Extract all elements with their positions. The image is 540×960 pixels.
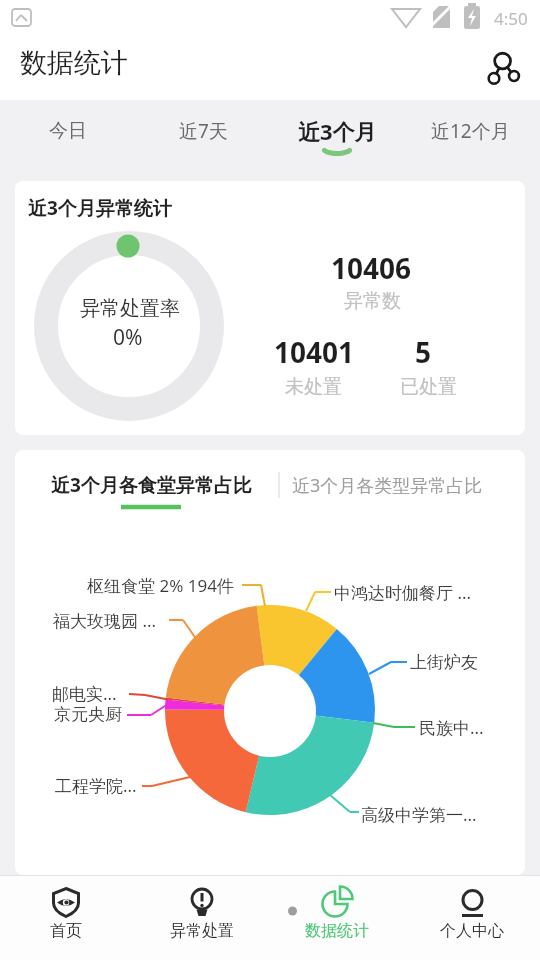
button[interactable]: 近3个月: [292, 100, 382, 162]
staticText: 京元央厨: [54, 704, 122, 725]
staticText: 10401: [274, 333, 355, 363]
staticText: 5: [415, 333, 432, 363]
staticText: 近3个月异常统计: [28, 195, 172, 218]
staticText: 中鸿达时伽餐厅 ...: [334, 581, 472, 602]
button[interactable]: 今日: [28, 100, 108, 162]
staticText: 工程学院...: [55, 774, 137, 795]
staticText: 4:50: [494, 7, 528, 30]
button[interactable]: 近12个月: [420, 100, 520, 162]
button[interactable]: 近7天: [163, 100, 243, 162]
staticText: 近12个月: [431, 118, 510, 144]
staticText: 异常数: [344, 289, 401, 310]
staticText: 近3个月各类型异常占比: [292, 473, 483, 494]
button[interactable]: [162, 878, 242, 958]
staticText: 近3个月各食堂异常占比: [51, 472, 252, 494]
staticText: 已处置: [400, 375, 457, 396]
staticText: 上街炉友: [410, 652, 478, 673]
staticText: 高级中学第一...: [361, 803, 477, 824]
button[interactable]: [36, 462, 268, 514]
staticText: 数据统计: [305, 921, 369, 941]
staticText: 未处置: [285, 375, 342, 396]
button[interactable]: [288, 462, 498, 514]
staticText: 数据统计: [20, 46, 128, 80]
staticText: 异常处置率: [80, 296, 180, 321]
staticText: 0%: [113, 323, 143, 347]
button[interactable]: [26, 878, 106, 958]
staticText: 近7天: [179, 118, 228, 144]
button[interactable]: [480, 44, 524, 88]
staticText: 近3个月: [298, 116, 377, 146]
staticText: 枢纽食堂 2% 194件: [87, 574, 234, 595]
staticText: 邮电实...: [52, 682, 117, 703]
staticText: 首页: [50, 921, 82, 941]
staticText: 个人中心: [440, 921, 504, 941]
staticText: 民族中...: [419, 716, 484, 737]
staticText: 福大玫瑰园 ...: [53, 609, 157, 630]
staticText: 10406: [331, 249, 412, 279]
staticText: 异常处置: [170, 921, 234, 941]
staticText: 今日: [49, 119, 87, 143]
button[interactable]: [432, 878, 512, 958]
button[interactable]: [297, 878, 377, 958]
